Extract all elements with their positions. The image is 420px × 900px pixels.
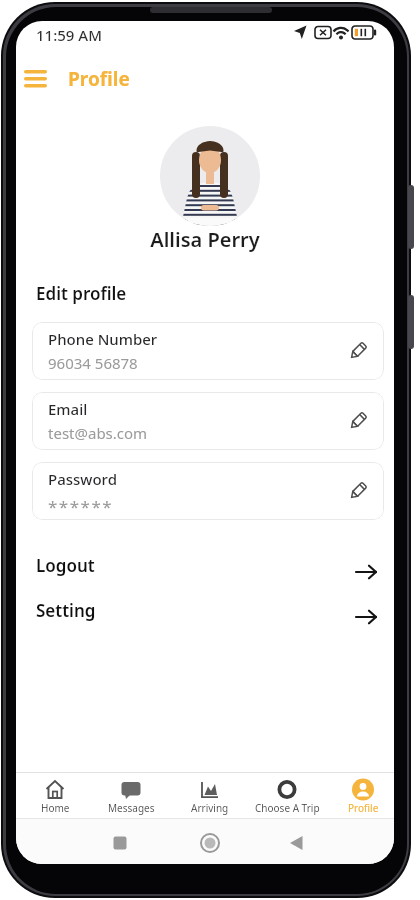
staticText: Choose A Trip [255, 801, 320, 815]
staticText: test@abs.com [48, 423, 148, 443]
button[interactable]: Arriving [178, 773, 242, 818]
button[interactable]: Choose A Trip [245, 773, 329, 818]
staticText: Arriving [191, 801, 229, 815]
staticText: Email [48, 399, 88, 419]
staticText: Password [48, 469, 117, 489]
staticText: Logout [36, 554, 95, 577]
staticText: Allisa Perry [16, 226, 394, 253]
staticText: Messages [108, 801, 155, 815]
button[interactable] [160, 126, 260, 226]
staticText: 96034 56878 [48, 353, 138, 373]
staticText: 11:59 AM [36, 25, 102, 45]
button[interactable]: Password [32, 462, 384, 520]
button[interactable]: Setting [32, 596, 384, 636]
button[interactable]: Email [32, 392, 384, 450]
button[interactable]: Messages [96, 773, 166, 818]
staticText: Profile [348, 801, 379, 815]
button[interactable] [20, 63, 60, 97]
staticText: Profile [68, 66, 130, 92]
staticText: ****** [48, 495, 114, 518]
staticText: Home [41, 801, 70, 815]
button[interactable]: Home [25, 773, 85, 818]
staticText: Phone Number [48, 329, 158, 349]
button[interactable]: Phone Number [32, 322, 384, 380]
button[interactable]: Logout [32, 551, 384, 591]
button[interactable]: Profile [333, 773, 393, 818]
staticText: Edit profile [36, 282, 127, 305]
staticText: Setting [36, 599, 96, 622]
